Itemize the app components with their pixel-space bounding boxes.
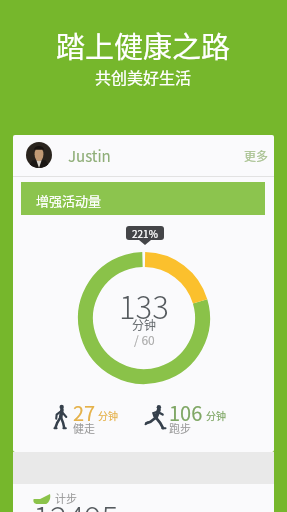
button[interactable]: Running — [144, 403, 239, 436]
staticText: 分钟 — [98, 408, 118, 422]
other: Running — [145, 405, 166, 429]
staticText: 12495 — [33, 493, 119, 512]
button[interactable]: 计步 — [13, 484, 274, 512]
staticText: Justin — [68, 145, 111, 167]
staticText: 221% — [132, 226, 158, 240]
staticText: 分钟 — [206, 408, 226, 422]
staticText: / 60 — [134, 331, 155, 348]
staticText: 106 — [169, 398, 203, 427]
staticText: 27 — [73, 398, 96, 427]
staticText: 踏上健康之路 — [56, 24, 231, 66]
staticText: 133 — [119, 283, 169, 328]
staticText: 健走 — [73, 420, 95, 436]
staticText: 跑步 — [169, 420, 191, 436]
staticText: 更多 — [244, 147, 269, 164]
staticText: 共创美好生活 — [95, 65, 192, 88]
staticText: 分钟 — [132, 316, 157, 333]
other: Walking — [53, 405, 67, 429]
button[interactable]: Walking — [51, 403, 141, 436]
button[interactable]: 增强活动量 — [21, 182, 265, 215]
staticText: 计步 — [55, 490, 77, 506]
button[interactable]: Justin — [13, 135, 274, 176]
staticText: 增强活动量 — [36, 191, 102, 210]
